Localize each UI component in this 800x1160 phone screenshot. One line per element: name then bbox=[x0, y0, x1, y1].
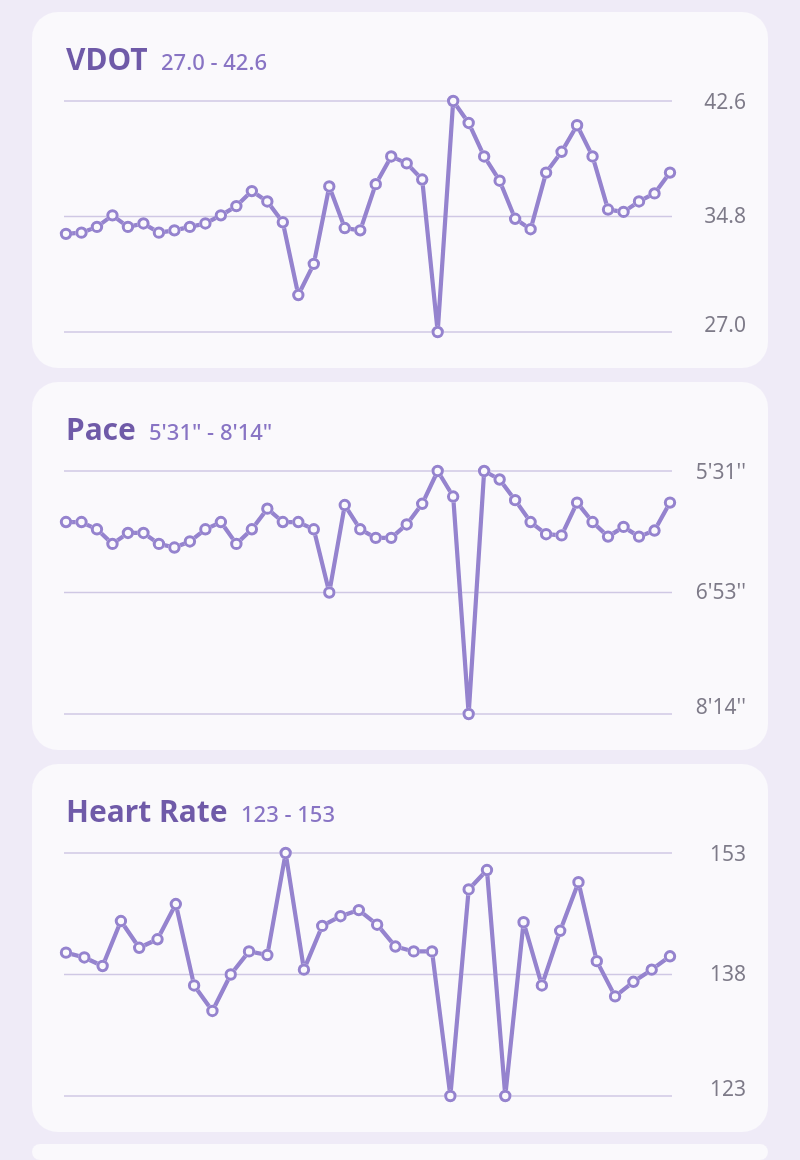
staticText: 27.0 bbox=[684, 310, 746, 339]
staticText: 138 bbox=[684, 959, 746, 988]
button[interactable]: Pace bbox=[32, 382, 768, 750]
staticText: Heart Rate bbox=[66, 790, 228, 831]
staticText: Pace bbox=[66, 408, 136, 449]
staticText: 123 bbox=[684, 1074, 746, 1103]
staticText: 5'31" - 8'14" bbox=[149, 416, 273, 446]
staticText: 27.0 - 42.6 bbox=[161, 46, 267, 76]
staticText: 34.8 bbox=[684, 201, 746, 230]
staticText: 6'53'' bbox=[684, 577, 746, 606]
staticText: 5'31'' bbox=[684, 457, 746, 486]
button[interactable]: Heart Rate bbox=[32, 764, 768, 1132]
button[interactable]: VDOT bbox=[32, 12, 768, 368]
staticText: 8'14'' bbox=[684, 692, 746, 721]
staticText: 42.6 bbox=[684, 87, 746, 116]
staticText: VDOT bbox=[66, 38, 148, 79]
staticText: 153 bbox=[684, 839, 746, 868]
staticText: 123 - 153 bbox=[241, 798, 336, 828]
